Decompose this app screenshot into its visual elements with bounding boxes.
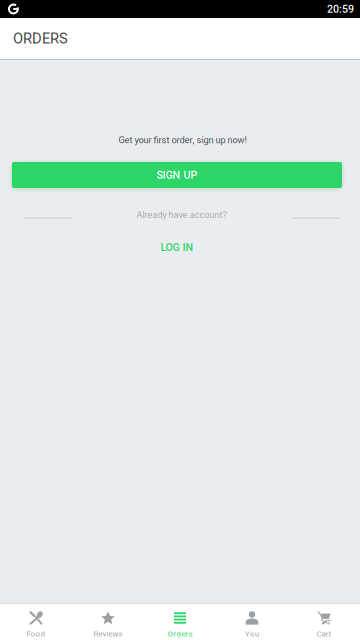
staticText: Food <box>26 629 45 638</box>
staticText: SIGN UP <box>156 169 197 181</box>
staticText: ORDERS <box>13 30 68 47</box>
staticText: Reviews <box>93 629 122 638</box>
staticText: Cart <box>316 629 331 638</box>
staticText: Already have account? <box>136 210 226 220</box>
button[interactable]: Food <box>0 604 72 640</box>
button[interactable]: Cart <box>288 604 360 640</box>
staticText: LOG IN <box>160 241 193 253</box>
staticText: Get your first order, sign up now! <box>118 134 246 145</box>
button[interactable]: LOG IN <box>146 236 207 258</box>
button[interactable]: SIGN UP <box>12 162 342 188</box>
button[interactable]: Orders <box>144 604 216 640</box>
staticText: Orders <box>167 629 192 638</box>
staticText: You <box>245 629 259 638</box>
button[interactable]: You <box>216 604 288 640</box>
button[interactable]: Reviews <box>72 604 144 640</box>
staticText: 20:59 <box>327 3 354 15</box>
